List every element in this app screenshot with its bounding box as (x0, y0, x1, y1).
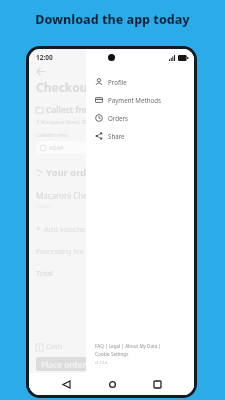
staticText: Profile (108, 78, 127, 86)
staticText: Collection time (36, 132, 68, 138)
staticText: Orders (108, 114, 129, 122)
staticText: Cash (46, 342, 63, 352)
button[interactable]: FAQ | Legal | About My Data | (95, 343, 161, 349)
staticText: Macaroni Cheese (36, 190, 101, 201)
staticText: Checkout (36, 79, 93, 95)
button[interactable]: Profile (95, 73, 194, 91)
staticText: + (36, 223, 41, 234)
staticText: Your order (46, 166, 97, 179)
staticText: Add voucher (44, 224, 89, 234)
button[interactable]: ASAP (36, 141, 175, 154)
staticText: Total (36, 268, 54, 278)
staticText: ASAP (49, 144, 64, 152)
button[interactable]: Back (57, 375, 75, 393)
staticText: 7 Margaret Road, Glasgow (36, 118, 105, 125)
button[interactable]: Recent apps (148, 375, 166, 393)
staticText: Share (108, 132, 125, 140)
staticText: Download the app today (35, 11, 190, 28)
button[interactable]: Orders (95, 109, 194, 127)
staticText: Cookie Settings (95, 351, 129, 357)
button[interactable]: Payment Methods (95, 91, 194, 109)
button[interactable]: Cookie Settings (95, 351, 129, 357)
staticText: Place order (41, 359, 86, 370)
staticText: Collect from (46, 104, 95, 115)
staticText: 12:00 (36, 53, 53, 62)
button[interactable]: Share (95, 127, 194, 145)
button[interactable]: Home (103, 375, 121, 393)
staticText: v1.12.4 (95, 360, 107, 365)
staticText: FAQ | Legal | About My Data | (95, 343, 161, 349)
button[interactable]: Place order (36, 357, 109, 371)
staticText: Payment Methods (108, 96, 161, 104)
staticText: Processing fee (36, 247, 84, 257)
button[interactable]: + (36, 223, 89, 234)
button[interactable]: Cash (36, 342, 63, 352)
